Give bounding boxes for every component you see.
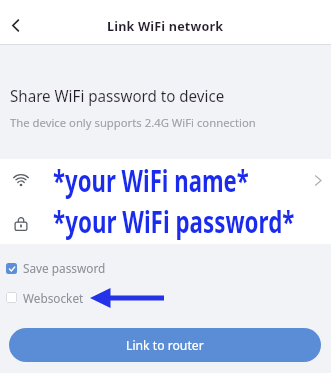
- button[interactable]: Link to router: [9, 328, 321, 362]
- button[interactable]: *your WiFi name*: [0, 159, 331, 203]
- button[interactable]: Websocket: [4, 287, 86, 307]
- staticText: *your WiFi password*: [53, 200, 295, 242]
- staticText: The device only supports 2.4G WiFi conne…: [10, 115, 256, 130]
- staticText: *your WiFi name*: [53, 159, 249, 201]
- button[interactable]: *your WiFi password*: [0, 203, 331, 245]
- staticText: Link WiFi network: [107, 18, 224, 35]
- staticText: Websocket: [23, 290, 84, 306]
- staticText: Share WiFi password to device: [10, 85, 224, 107]
- staticText: Save password: [23, 260, 106, 276]
- button[interactable]: Back: [1, 11, 29, 39]
- button[interactable]: Save password: [4, 258, 108, 278]
- staticText: Link to router: [126, 337, 204, 354]
